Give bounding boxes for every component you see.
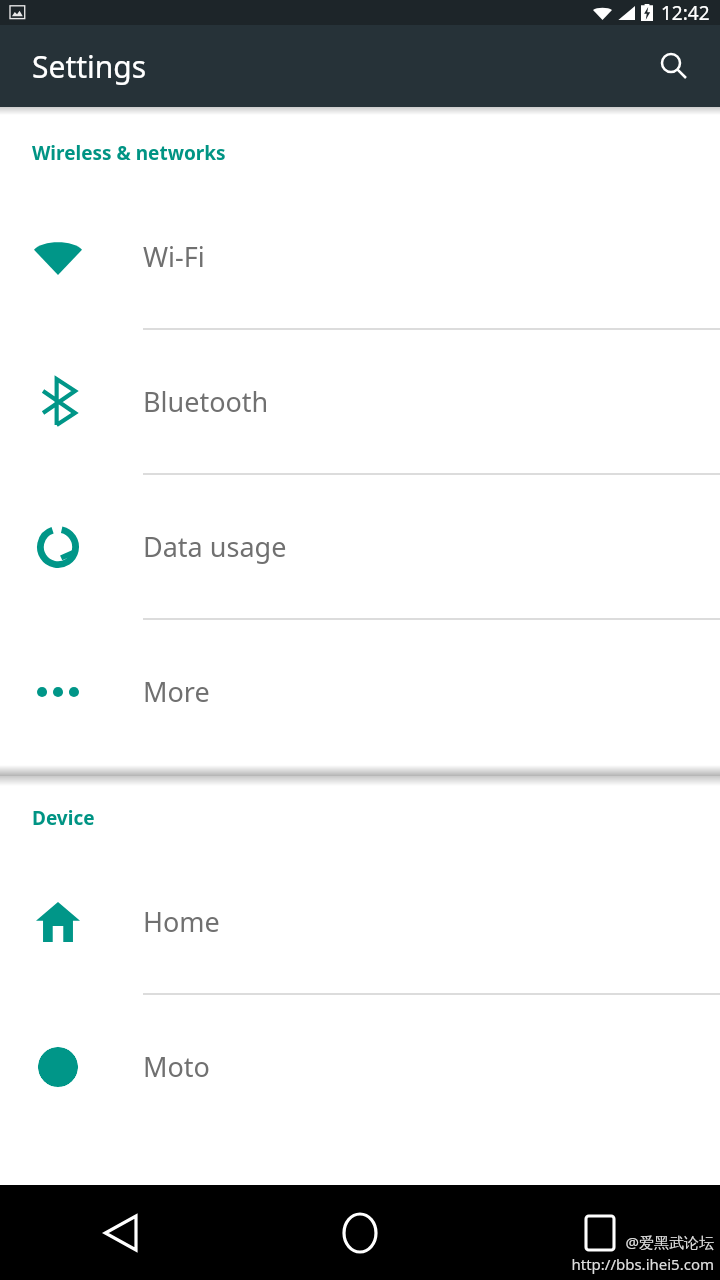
staticText: Data usage	[143, 528, 287, 565]
staticText: http://bbs.ihei5.com	[571, 1254, 714, 1274]
button[interactable]: Bluetooth	[0, 330, 720, 475]
staticText: Home	[143, 903, 220, 940]
button[interactable]: Back	[0, 1185, 240, 1280]
button[interactable]: Home	[0, 850, 720, 995]
button[interactable]: Wi-Fi	[0, 185, 720, 330]
staticText: @爱黑武论坛	[625, 1232, 714, 1252]
staticText: Moto	[143, 1048, 210, 1085]
staticText: Bluetooth	[143, 383, 269, 420]
button[interactable]: Data usage	[0, 475, 720, 620]
staticText: Wi-Fi	[143, 238, 205, 275]
button[interactable]: Search	[648, 40, 700, 92]
staticText: Device	[32, 805, 95, 831]
staticText: 12:42	[661, 0, 710, 25]
button[interactable]: More	[0, 620, 720, 765]
button[interactable]: Moto	[0, 995, 720, 1140]
staticText: Wireless & networks	[32, 140, 226, 166]
staticText: Settings	[32, 46, 147, 87]
button[interactable]: Recent apps	[480, 1185, 720, 1280]
staticText: More	[143, 673, 210, 710]
button[interactable]: Home	[240, 1185, 480, 1280]
